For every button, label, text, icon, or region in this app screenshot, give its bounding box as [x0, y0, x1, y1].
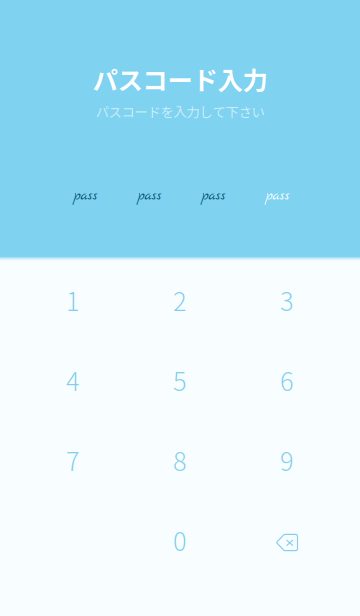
- staticText: 2: [173, 282, 187, 318]
- staticText: 3: [280, 282, 294, 318]
- staticText: 8: [173, 442, 187, 478]
- staticText: パスコード入力: [92, 61, 267, 97]
- staticText: 5: [173, 362, 187, 398]
- staticText: pass: [265, 187, 289, 205]
- staticText: pass: [137, 187, 161, 205]
- button[interactable]: 3: [233, 260, 340, 340]
- staticText: pass: [201, 187, 225, 205]
- staticText: 7: [66, 442, 80, 478]
- button[interactable]: 7: [19, 420, 126, 500]
- button[interactable]: 9: [233, 420, 340, 500]
- staticText: パスコードを入力して下さい: [95, 102, 264, 121]
- staticText: 0: [173, 522, 187, 558]
- staticText: 4: [66, 362, 80, 398]
- button[interactable]: 6: [233, 340, 340, 420]
- button[interactable]: Delete: [233, 500, 340, 580]
- button[interactable]: 2: [126, 260, 233, 340]
- staticText: 1: [66, 282, 80, 318]
- staticText: 9: [280, 442, 294, 478]
- button[interactable]: 8: [126, 420, 233, 500]
- button[interactable]: 5: [126, 340, 233, 420]
- button[interactable]: 4: [19, 340, 126, 420]
- staticText: pass: [73, 187, 97, 205]
- button[interactable]: 0: [126, 500, 233, 580]
- staticText: 6: [280, 362, 294, 398]
- button[interactable]: 1: [19, 260, 126, 340]
